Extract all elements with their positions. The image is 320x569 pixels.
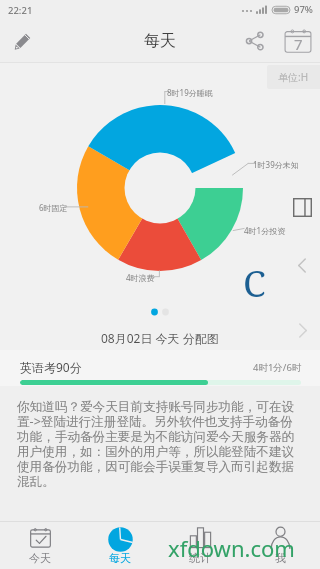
button[interactable]: 英语考90分 (0, 350, 320, 386)
button[interactable]: 今天 (0, 521, 80, 569)
staticText: xfdown.com (168, 533, 295, 563)
staticText: 7 (294, 34, 303, 54)
button[interactable]: 统计 (160, 521, 240, 569)
button[interactable]: Next (288, 316, 316, 344)
button[interactable]: 每天 (80, 521, 160, 569)
button[interactable]: Edit (4, 23, 40, 59)
staticText: 8时19分睡眠 (167, 87, 213, 98)
staticText: 22:21 (8, 4, 33, 17)
staticText: 4时浪费 (126, 272, 155, 283)
button[interactable]: Previous (288, 251, 316, 279)
button[interactable]: Split view (288, 193, 316, 221)
button[interactable]: Calendar (282, 25, 314, 57)
staticText: 每天 (144, 31, 176, 51)
staticText: 今天 (29, 551, 51, 565)
staticText: 6时固定 (39, 202, 68, 213)
staticText: 1时39分未知 (253, 159, 299, 170)
staticText: 英语考90分 (20, 359, 82, 375)
staticText: 单位:H (278, 70, 309, 84)
button[interactable]: 单位:H (267, 65, 320, 89)
staticText: 你知道吗？爱今天目前支持账号同步功能，可在设置->登陆进行注册登陆。另外软件也支… (17, 399, 301, 490)
staticText: 统计 (189, 551, 211, 565)
staticText: 4时1分/6时 (253, 361, 302, 374)
button[interactable]: Share (239, 25, 271, 57)
staticText: C (243, 257, 266, 307)
staticText: 08月02日 今天 分配图 (101, 330, 219, 346)
button[interactable]: 我 (240, 521, 320, 569)
staticText: 97% (294, 3, 313, 16)
staticText: 每天 (109, 551, 131, 565)
staticText: 4时1分投资 (244, 225, 286, 236)
staticText: 我 (275, 551, 286, 565)
